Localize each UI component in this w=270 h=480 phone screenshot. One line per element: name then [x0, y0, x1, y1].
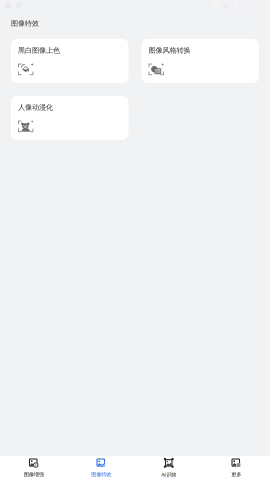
staticText: 图像特效 — [11, 19, 39, 28]
staticText: 人像动漫化 — [18, 103, 53, 112]
button[interactable]: 更多 — [202, 456, 270, 480]
staticText: 图像特效 — [91, 471, 111, 478]
staticText: 黑白图像上色 — [18, 46, 60, 55]
staticText: 4G — [222, 1, 230, 10]
staticText: 图像增强 — [24, 471, 44, 478]
staticText: 更多 — [231, 471, 241, 478]
staticText: 图像风格转换 — [148, 46, 190, 55]
staticText: AI识物 — [161, 471, 176, 478]
button[interactable]: 黑白图像上色 — [11, 39, 128, 83]
button[interactable]: AI识物 — [135, 456, 202, 480]
button[interactable]: 人像动漫化 — [11, 96, 128, 140]
button[interactable]: 图像特效 — [67, 456, 135, 480]
button[interactable]: 图像风格转换 — [141, 39, 259, 83]
button[interactable]: 图像增强 — [0, 456, 67, 480]
